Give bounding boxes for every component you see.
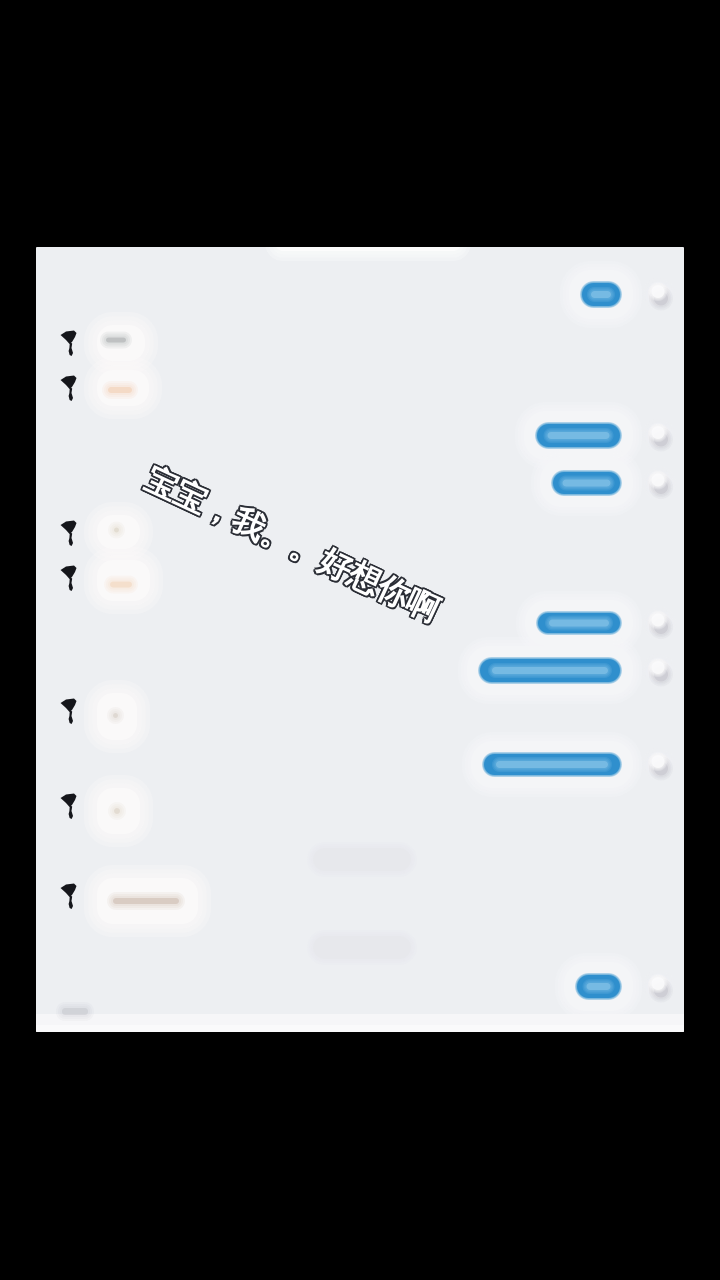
button[interactable] xyxy=(58,357,162,419)
button[interactable] xyxy=(58,865,211,937)
button[interactable] xyxy=(516,591,676,655)
staticText: 宝宝，我。。好想你啊 xyxy=(130,523,450,564)
button[interactable] xyxy=(462,732,676,797)
button[interactable] xyxy=(58,502,153,562)
staticText: 宝宝，我。。好想你啊 xyxy=(132,527,452,567)
staticText: 宝宝，我。。好想你啊 xyxy=(133,523,453,564)
button[interactable] xyxy=(58,312,158,374)
button[interactable] xyxy=(458,637,676,704)
staticText: 宝宝，我。。好想你啊 xyxy=(133,526,453,567)
staticText: 宝宝，我。。好想你啊 xyxy=(132,523,452,564)
staticText: 宝宝，我。。好想你啊 xyxy=(132,525,452,565)
staticText: 宝宝，我。。好想你啊 xyxy=(130,525,450,565)
button[interactable] xyxy=(515,402,676,469)
staticText: 宝宝，我。。好想你啊 xyxy=(134,525,454,565)
button[interactable] xyxy=(58,547,163,614)
button[interactable] xyxy=(555,953,676,1020)
staticText: 宝宝，我。。好想你啊 xyxy=(130,526,450,567)
button[interactable] xyxy=(58,775,153,847)
button[interactable] xyxy=(58,680,150,753)
button[interactable] xyxy=(531,450,676,516)
button[interactable] xyxy=(560,261,676,328)
